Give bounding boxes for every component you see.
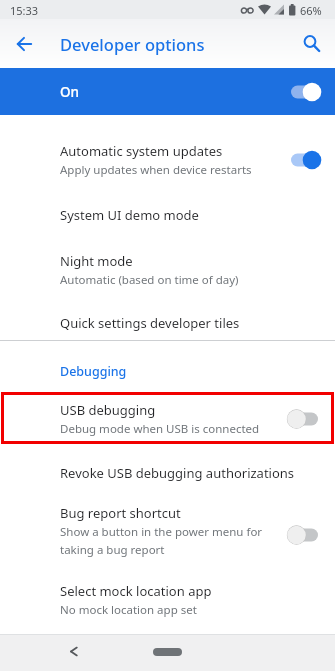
button[interactable]: USB debugging (0, 392, 335, 445)
staticText: Bug report shortcut (60, 504, 181, 522)
button[interactable]: Revoke USB debugging authorizations (0, 445, 335, 501)
staticText: Select mock location app (60, 582, 212, 600)
button[interactable] (289, 19, 335, 68)
staticText: USB debugging (60, 401, 156, 419)
staticText: Quick settings developer tiles (60, 314, 240, 332)
staticText: Automatic system updates (60, 142, 223, 160)
staticText: Night mode (60, 252, 133, 270)
staticText: Debug mode when USB is connected (60, 421, 260, 437)
staticText: Debugging (60, 363, 127, 380)
button[interactable]: On (0, 68, 335, 115)
staticText: Revoke USB debugging authorizations (60, 464, 295, 482)
button[interactable]: Select mock location app (0, 571, 335, 628)
button[interactable]: Quick settings developer tiles (0, 306, 335, 339)
staticText: taking a bug report (60, 542, 165, 558)
staticText: Automatic (based on time of day) (60, 272, 239, 288)
button[interactable]: Night mode (0, 233, 335, 306)
button[interactable]: Automatic system updates (0, 123, 335, 197)
button[interactable]: Bug report shortcut (0, 501, 335, 560)
staticText: On (60, 83, 80, 101)
staticText: Show a button in the power menu for (60, 524, 263, 540)
staticText: Apply updates when device restarts (60, 162, 252, 178)
button[interactable] (0, 19, 48, 68)
staticText: 15:33 (10, 3, 39, 18)
staticText: 66% (300, 3, 322, 18)
staticText: System UI demo mode (60, 206, 199, 224)
button[interactable] (153, 648, 182, 656)
staticText: No mock location app set (60, 602, 197, 618)
button[interactable]: System UI demo mode (0, 197, 335, 233)
staticText: Developer options (60, 33, 205, 55)
button[interactable] (58, 634, 90, 671)
